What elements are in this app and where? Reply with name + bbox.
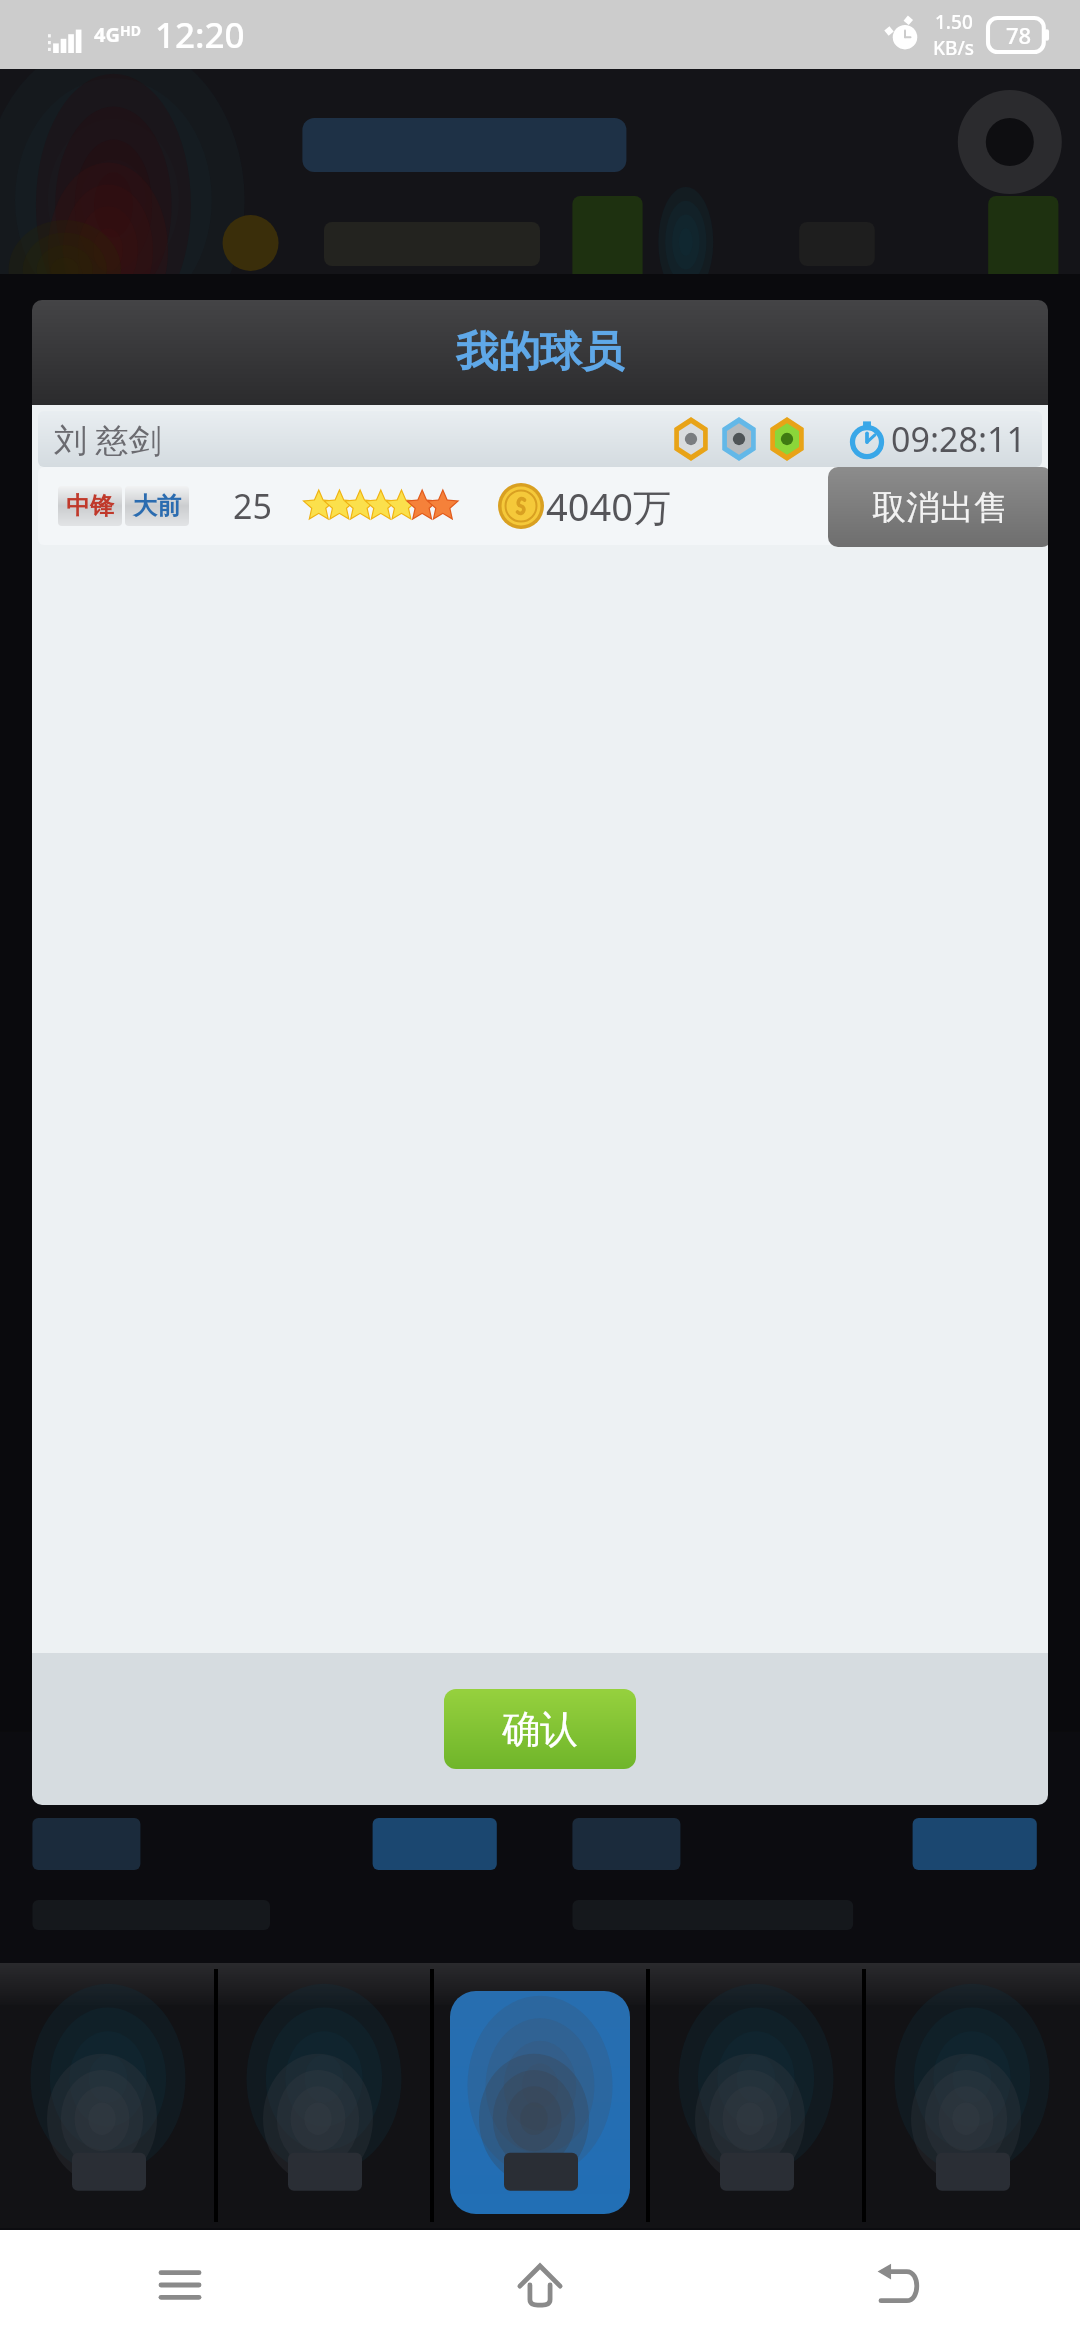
staticText: KB/s: [933, 35, 974, 61]
staticText: 取消出售: [872, 486, 1008, 529]
staticText: 4G: [94, 21, 120, 48]
staticText: 4040万: [546, 480, 671, 532]
staticText: HD: [120, 21, 141, 40]
button[interactable]: Menu: [0, 2230, 360, 2340]
staticText: 确认: [502, 1705, 578, 1753]
staticText: 78: [1006, 20, 1032, 50]
staticText: 刘 慈剑: [54, 417, 162, 462]
staticText: 中锋: [66, 491, 114, 521]
staticText: 25: [233, 483, 272, 529]
staticText: 大前: [133, 491, 181, 521]
button[interactable]: 中锋: [38, 467, 1042, 545]
button[interactable]: 刘 慈剑: [38, 411, 1042, 467]
button[interactable]: 确认: [444, 1689, 636, 1769]
staticText: 我的球员: [456, 326, 624, 379]
staticText: 1.50: [935, 9, 973, 35]
staticText: 09:28:11: [891, 416, 1026, 462]
staticText: 12:20: [155, 11, 245, 59]
button[interactable]: 取消出售: [828, 467, 1048, 547]
button[interactable]: Back: [720, 2230, 1080, 2340]
button[interactable]: Home: [360, 2230, 720, 2340]
